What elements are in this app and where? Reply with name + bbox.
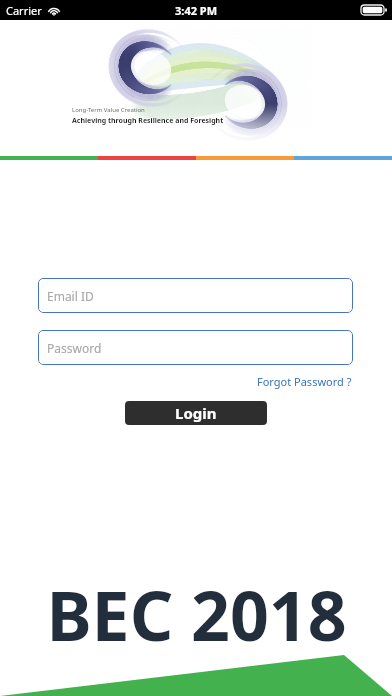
staticText: Email ID (47, 288, 94, 304)
button[interactable]: Forgot Password ? (256, 372, 353, 391)
staticText: Password (47, 340, 102, 356)
staticText: Carrier (6, 3, 42, 18)
staticText: 3:42 PM (175, 3, 218, 18)
staticText: Login (175, 403, 217, 423)
button[interactable]: Login (125, 401, 267, 425)
staticText: BEC 2018 (46, 568, 347, 661)
button[interactable]: Email ID (38, 278, 353, 313)
button[interactable]: Password (38, 330, 353, 365)
staticText: Long-Term Value Creation (72, 106, 145, 114)
staticText: Achieving through Resilience and Foresig… (72, 116, 224, 126)
